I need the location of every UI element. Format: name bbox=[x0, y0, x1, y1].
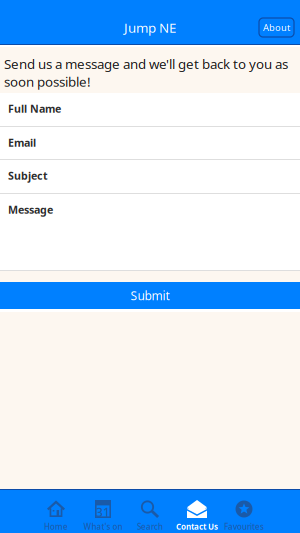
staticText: Email bbox=[8, 135, 36, 150]
staticText: Search bbox=[137, 521, 163, 532]
button[interactable]: Contact Us bbox=[173, 490, 220, 533]
button[interactable]: Subject bbox=[0, 160, 300, 193]
staticText: Full Name bbox=[8, 101, 61, 116]
button[interactable]: Search bbox=[126, 490, 173, 533]
staticText: What's on bbox=[83, 521, 122, 532]
staticText: Subject bbox=[8, 168, 48, 183]
staticText: Contact Us bbox=[176, 521, 218, 532]
button[interactable]: Message bbox=[0, 194, 300, 270]
staticText: Message bbox=[8, 202, 53, 217]
button[interactable]: Submit bbox=[0, 282, 300, 309]
staticText: 31 bbox=[96, 504, 110, 520]
staticText: About bbox=[263, 21, 290, 34]
staticText: Favourites bbox=[224, 521, 264, 532]
staticText: Submit bbox=[130, 287, 169, 303]
button[interactable]: About bbox=[259, 18, 294, 37]
button[interactable]: Full Name bbox=[0, 93, 300, 126]
button[interactable]: 31 bbox=[79, 490, 126, 533]
staticText: Send us a message and we'll get back to … bbox=[4, 55, 288, 90]
button[interactable]: Favourites bbox=[220, 490, 267, 533]
staticText: Jump NE bbox=[124, 19, 176, 36]
staticText: Home bbox=[44, 521, 68, 532]
button[interactable]: Email bbox=[0, 127, 300, 159]
button[interactable]: Home bbox=[32, 490, 79, 533]
